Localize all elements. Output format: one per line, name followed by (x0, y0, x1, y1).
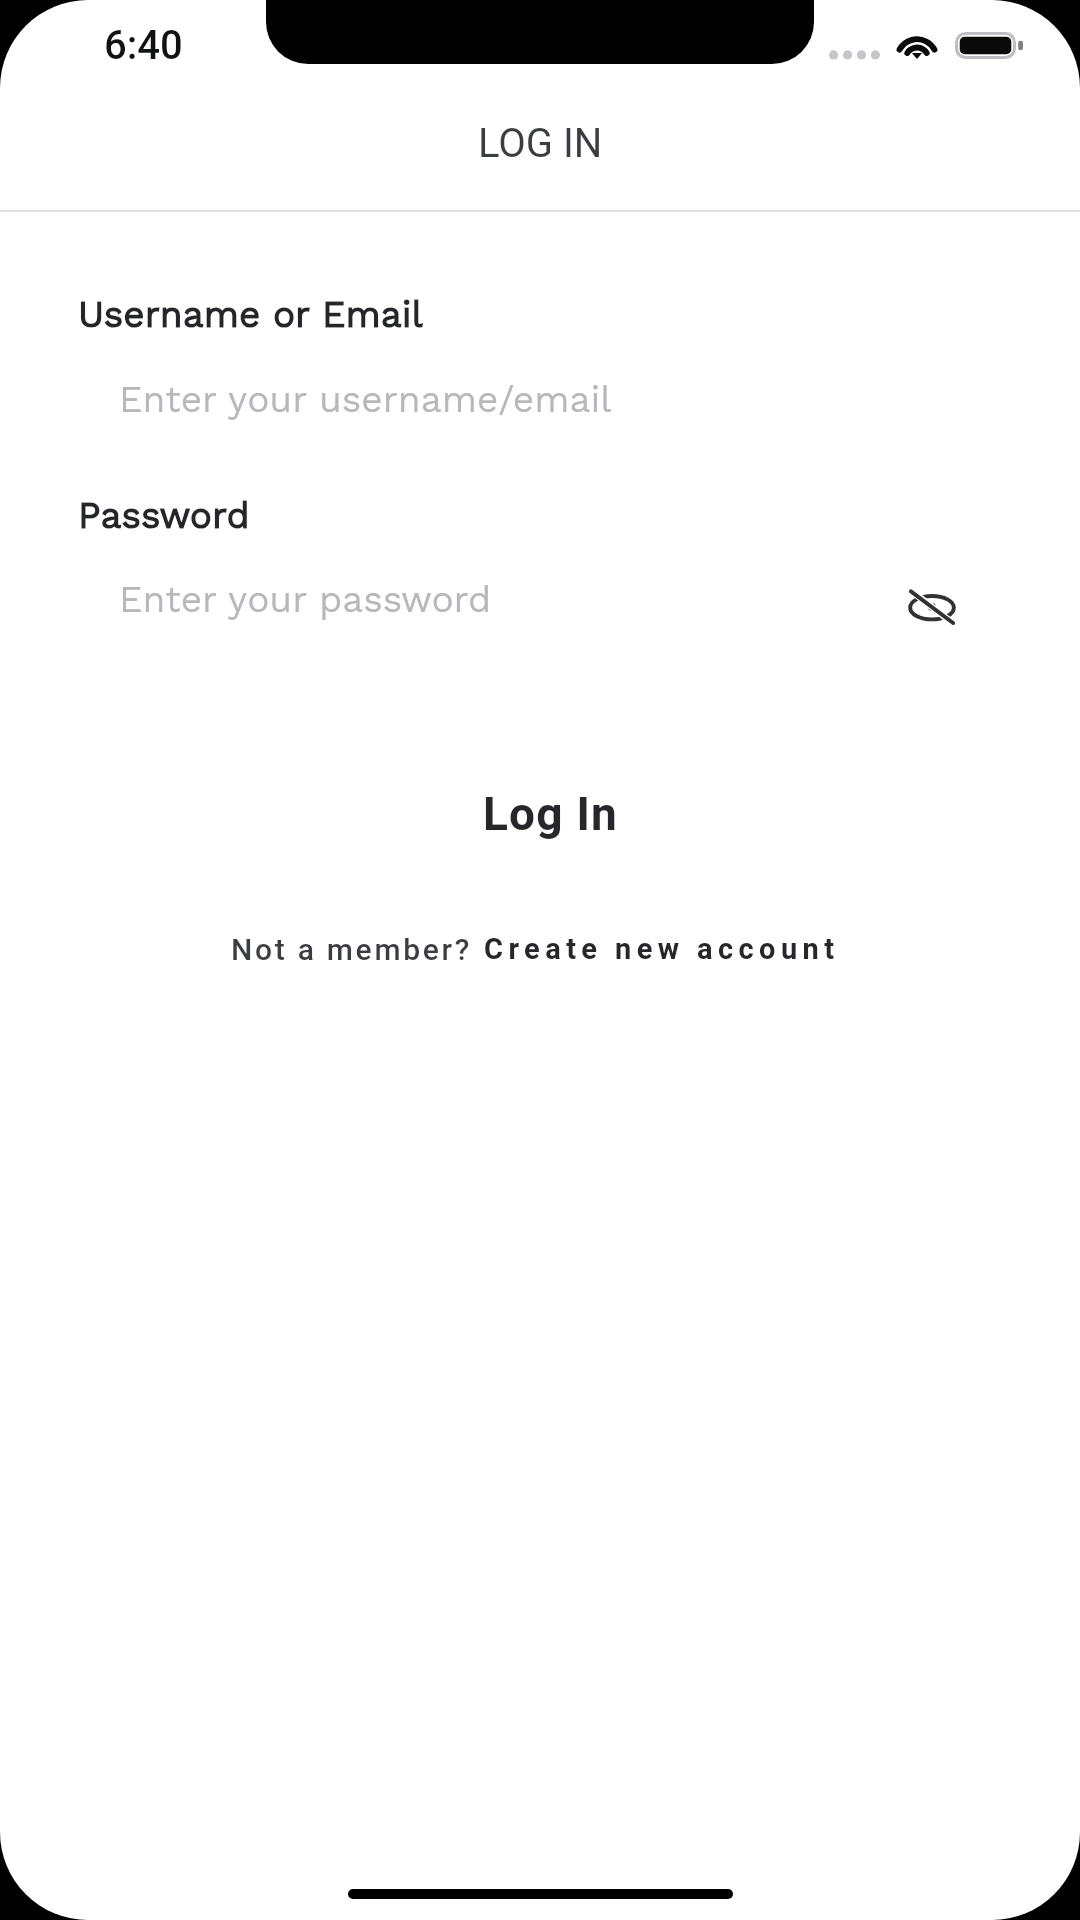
staticText: Enter your password (119, 578, 492, 621)
button[interactable]: Show password (897, 572, 967, 642)
staticText: Not a member? (231, 932, 473, 967)
button[interactable]: Log In (0, 778, 1080, 850)
button[interactable]: Create new account (484, 932, 840, 966)
staticText: Username or Email (78, 293, 423, 336)
staticText: Create new account (484, 932, 840, 966)
staticText: Password (78, 494, 250, 537)
button[interactable]: Enter your username/email (0, 364, 1080, 434)
staticText: 6:40 (104, 22, 183, 69)
staticText: Log In (483, 787, 619, 841)
staticText: LOG IN (478, 120, 603, 167)
button[interactable]: Enter your password (0, 564, 1080, 634)
staticText: Enter your username/email (119, 378, 612, 421)
